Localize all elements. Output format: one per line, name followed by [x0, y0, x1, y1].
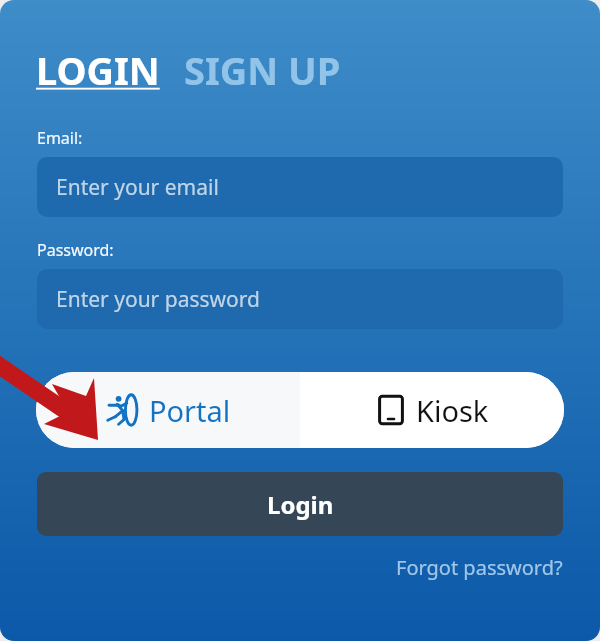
staticText: Enter your password [56, 285, 260, 314]
staticText: Login [267, 488, 334, 521]
button[interactable]: LOGIN [36, 44, 160, 96]
button[interactable]: Portal [36, 372, 300, 448]
staticText: Email: [37, 127, 83, 149]
button[interactable]: Forgot password? [396, 554, 563, 581]
button[interactable]: Enter your password [37, 269, 563, 329]
staticText: Forgot password? [396, 554, 563, 581]
button[interactable]: SIGN UP [184, 44, 341, 96]
other: Kiosk [376, 395, 406, 425]
button[interactable]: Enter your email [37, 157, 563, 217]
staticText: Enter your email [56, 173, 219, 202]
staticText: Portal [149, 391, 231, 430]
button[interactable]: Kiosk [300, 372, 564, 448]
staticText: Password: [37, 239, 114, 261]
staticText: Kiosk [416, 391, 489, 430]
staticText: LOGIN [36, 44, 160, 96]
other: Portal [105, 393, 139, 427]
button[interactable]: Login [37, 472, 563, 536]
staticText: SIGN UP [184, 44, 341, 96]
